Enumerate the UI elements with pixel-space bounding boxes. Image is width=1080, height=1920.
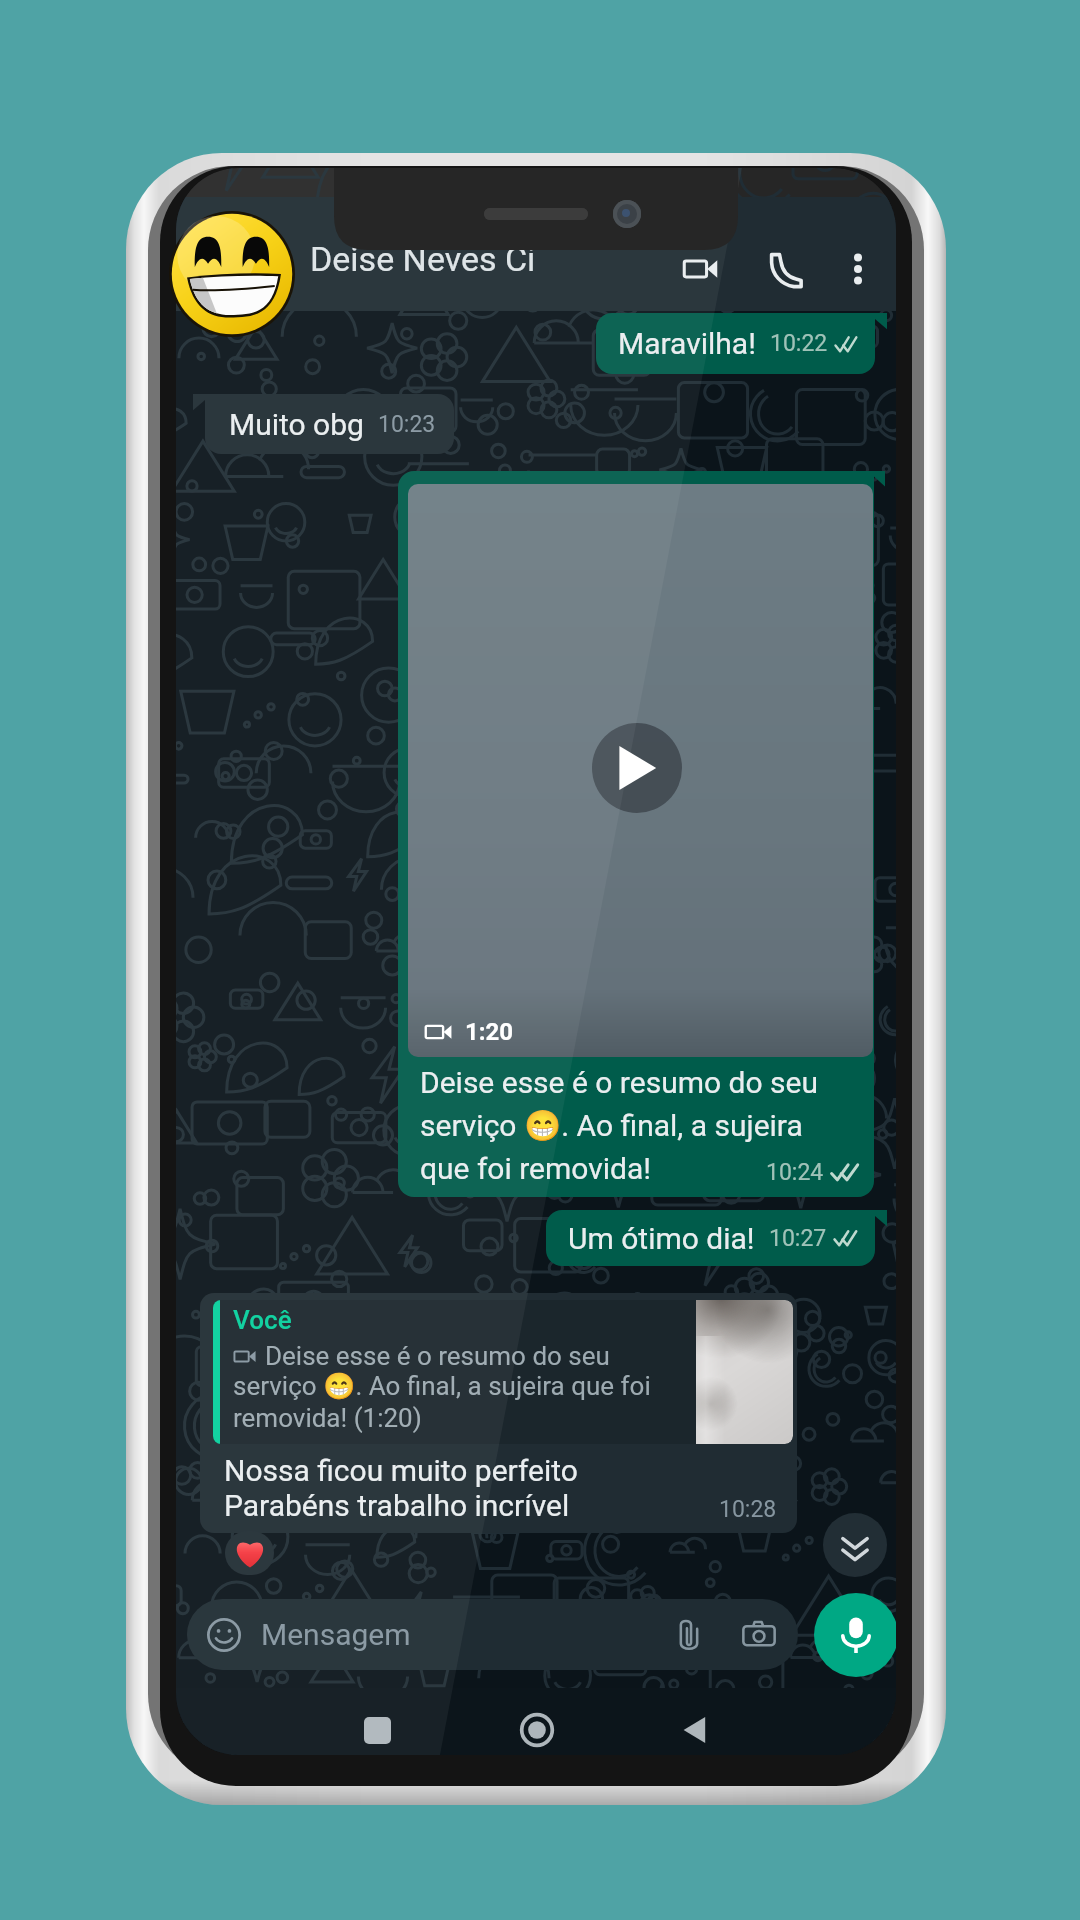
button[interactable]: Scroll to bottom (823, 1513, 887, 1577)
button[interactable]: Contact avatar (169, 211, 295, 337)
staticText: 1:20 (465, 1018, 514, 1046)
button[interactable]: Maravilha! (596, 313, 875, 374)
button[interactable]: Video call (672, 241, 728, 297)
staticText: Maravilha! (618, 326, 756, 361)
button[interactable]: Play video (398, 471, 885, 1197)
staticText: Deise Neves Ci (310, 239, 536, 279)
staticText: 10:23 (378, 411, 436, 438)
button[interactable]: Um ótimo dia! (546, 1210, 875, 1266)
button[interactable]: Voice call (758, 241, 814, 297)
button[interactable]: Heart reaction (225, 1531, 274, 1575)
staticText: Deise esse é o resumo do seu serviço 😁. … (420, 1065, 818, 1186)
staticText: Um ótimo dia! (568, 1221, 755, 1256)
staticText: Nossa ficou muito perfeito Parabéns trab… (224, 1453, 578, 1523)
staticText: 10:22 (770, 330, 828, 357)
button[interactable]: Record voice message (814, 1593, 896, 1677)
button[interactable]: Mensagem (187, 1599, 798, 1670)
staticText: Você (233, 1305, 292, 1335)
button[interactable]: Recent apps (347, 1700, 407, 1755)
button[interactable]: Você (200, 1293, 797, 1533)
staticText: Mensagem (261, 1617, 411, 1652)
button[interactable]: Back (665, 1700, 725, 1755)
staticText: 10:28 (719, 1496, 777, 1523)
staticText: Deise esse é o resumo do seu (265, 1341, 610, 1371)
staticText: serviço 😁. Ao final, a sujeira que foi r… (233, 1371, 651, 1433)
button[interactable]: Play video (592, 723, 682, 813)
button[interactable]: More options (830, 241, 886, 297)
staticText: Muito obg (229, 407, 364, 442)
button[interactable]: Muito obg (205, 394, 454, 454)
staticText: 10:27 (769, 1225, 827, 1252)
staticText: 10:24 (766, 1159, 824, 1186)
button[interactable]: Home (507, 1700, 567, 1755)
